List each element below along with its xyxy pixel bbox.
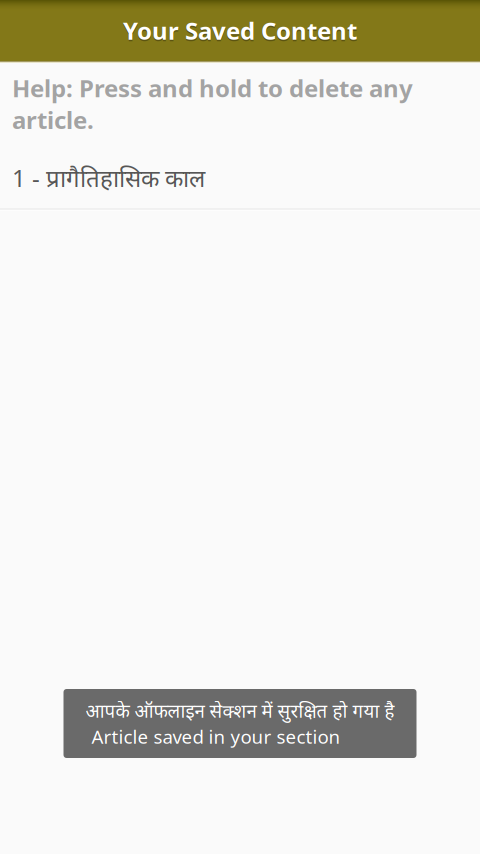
staticText: Your Saved Content [123, 15, 357, 46]
staticText: Your Saved Content [123, 16, 357, 48]
staticText: 1 - प्रागैतिहासिक काल [12, 162, 205, 194]
staticText: Article saved in your section [91, 724, 340, 749]
staticText: आपके ऑफलाइन सेक्शन में सुरक्षित हो गया ह… [85, 698, 394, 723]
button[interactable]: 1 - प्रागैतिहासिक काल [0, 136, 480, 209]
staticText: Help: Press and hold to delete any artic… [12, 72, 413, 136]
